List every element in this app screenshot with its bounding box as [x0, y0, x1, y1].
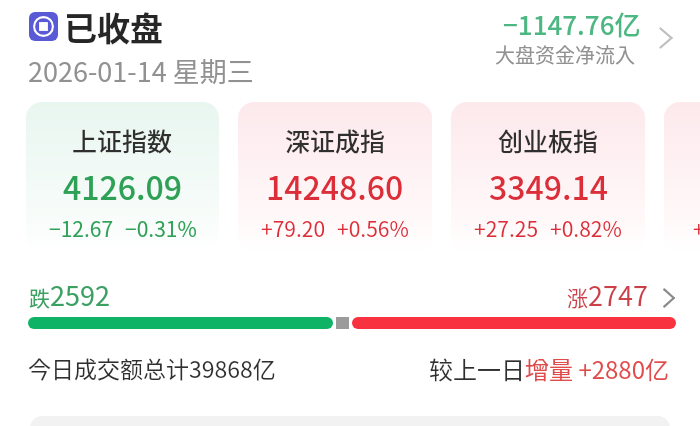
button[interactable]: 涨2747 — [567, 275, 685, 314]
staticText: −0.31% — [125, 213, 197, 243]
staticText: 今日成交额总计39868亿 — [28, 351, 276, 384]
staticText: +0.82% — [550, 213, 622, 243]
button[interactable]: Capital flow details — [501, 2, 687, 72]
staticText: 2026-01-14 星期三 — [28, 51, 254, 90]
button[interactable]: 已收盘 — [29, 11, 163, 53]
staticText: 深证成指 — [285, 122, 386, 158]
staticText: 3349.14 — [489, 163, 608, 209]
staticText: +79.20 — [261, 213, 326, 243]
button[interactable]: 上证指数 — [26, 102, 219, 252]
staticText: 14248.60 — [266, 163, 404, 209]
staticText: 已收盘 — [64, 3, 163, 45]
button[interactable]: 科创50 — [664, 102, 700, 252]
staticText: 大盘资金净流入 — [495, 40, 635, 69]
staticText: −1147.76亿 — [503, 5, 641, 43]
button[interactable]: 创业板指 — [451, 102, 645, 252]
staticText: +0.56% — [337, 213, 409, 243]
other: Up down details — [657, 286, 681, 310]
button[interactable]: 深证成指 — [238, 102, 432, 252]
staticText: 较上一日增量 +2880亿 — [429, 351, 669, 386]
staticText: 4126.09 — [63, 163, 182, 209]
staticText: −12.67 — [49, 213, 114, 243]
staticText: +9.18 — [693, 213, 700, 243]
staticText: 涨2747 — [567, 275, 648, 314]
staticText: 跌2592 — [29, 275, 110, 314]
staticText: 上证指数 — [72, 122, 173, 158]
staticText: +27.25 — [474, 213, 539, 243]
staticText: 创业板指 — [498, 122, 599, 158]
